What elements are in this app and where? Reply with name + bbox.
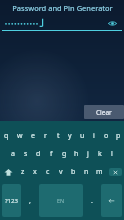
button[interactable]: j (82, 145, 94, 163)
button[interactable]: Backspace (106, 163, 124, 181)
button[interactable]: m (93, 163, 106, 181)
button[interactable]: v (54, 163, 67, 181)
button[interactable]: y (64, 127, 76, 145)
staticText: v (59, 167, 63, 177)
staticText: a (11, 149, 15, 159)
staticText: w (17, 131, 23, 141)
button[interactable]: f (45, 145, 58, 163)
button[interactable]: z (17, 163, 29, 181)
staticText: d (36, 149, 41, 159)
button[interactable]: . (85, 184, 99, 217)
button[interactable]: Shift (0, 163, 17, 181)
staticText: i (93, 131, 95, 141)
staticText: t (57, 131, 60, 141)
staticText: m (96, 167, 103, 177)
button[interactable]: n (80, 163, 93, 181)
button[interactable]: t (52, 127, 64, 145)
button[interactable]: d (32, 145, 45, 163)
staticText: j (87, 149, 89, 159)
staticText: k (98, 149, 102, 159)
button[interactable]: EN (39, 184, 83, 217)
button[interactable]: b (67, 163, 80, 181)
staticText: g (62, 149, 67, 159)
button[interactable]: w (13, 127, 26, 145)
staticText: h (74, 149, 79, 159)
staticText: f (50, 149, 53, 159)
staticText: r (44, 131, 47, 141)
button[interactable]: h (70, 145, 82, 163)
button[interactable]: Show password (0, 16, 124, 30)
staticText: EN (57, 197, 65, 204)
button[interactable]: s (19, 145, 32, 163)
button[interactable]: l (106, 145, 118, 163)
staticText: u (80, 131, 85, 141)
button[interactable]: Clear (84, 105, 124, 119)
button[interactable]: c (41, 163, 54, 181)
staticText: o (104, 131, 109, 141)
staticText: s (24, 149, 28, 159)
button[interactable]: i (88, 127, 100, 145)
button[interactable]: x (29, 163, 41, 181)
button[interactable]: u (76, 127, 88, 145)
button[interactable]: k (94, 145, 106, 163)
button[interactable]: a (6, 145, 19, 163)
button[interactable]: , (23, 184, 37, 217)
staticText: , (29, 196, 31, 206)
button[interactable]: g (58, 145, 70, 163)
button[interactable]: Enter (101, 184, 122, 217)
staticText: ?123 (5, 197, 18, 205)
button[interactable]: ?123 (2, 184, 21, 217)
staticText: x (33, 167, 37, 177)
staticText: l (111, 149, 113, 159)
staticText: b (71, 167, 76, 177)
staticText: Clear (96, 108, 112, 117)
staticText: y (68, 131, 72, 141)
button[interactable]: q (0, 127, 13, 145)
staticText: z (21, 167, 25, 177)
staticText: . (91, 196, 93, 206)
staticText: n (84, 167, 89, 177)
button[interactable]: e (26, 127, 39, 145)
staticText: p (116, 131, 121, 141)
button[interactable]: o (100, 127, 112, 145)
staticText: c (46, 167, 50, 177)
staticText: Password and Pin Generator (12, 3, 113, 13)
button[interactable]: Show password (105, 16, 119, 30)
staticText: e (31, 131, 35, 141)
button[interactable]: r (39, 127, 52, 145)
staticText: q (4, 131, 9, 141)
button[interactable]: p (112, 127, 124, 145)
